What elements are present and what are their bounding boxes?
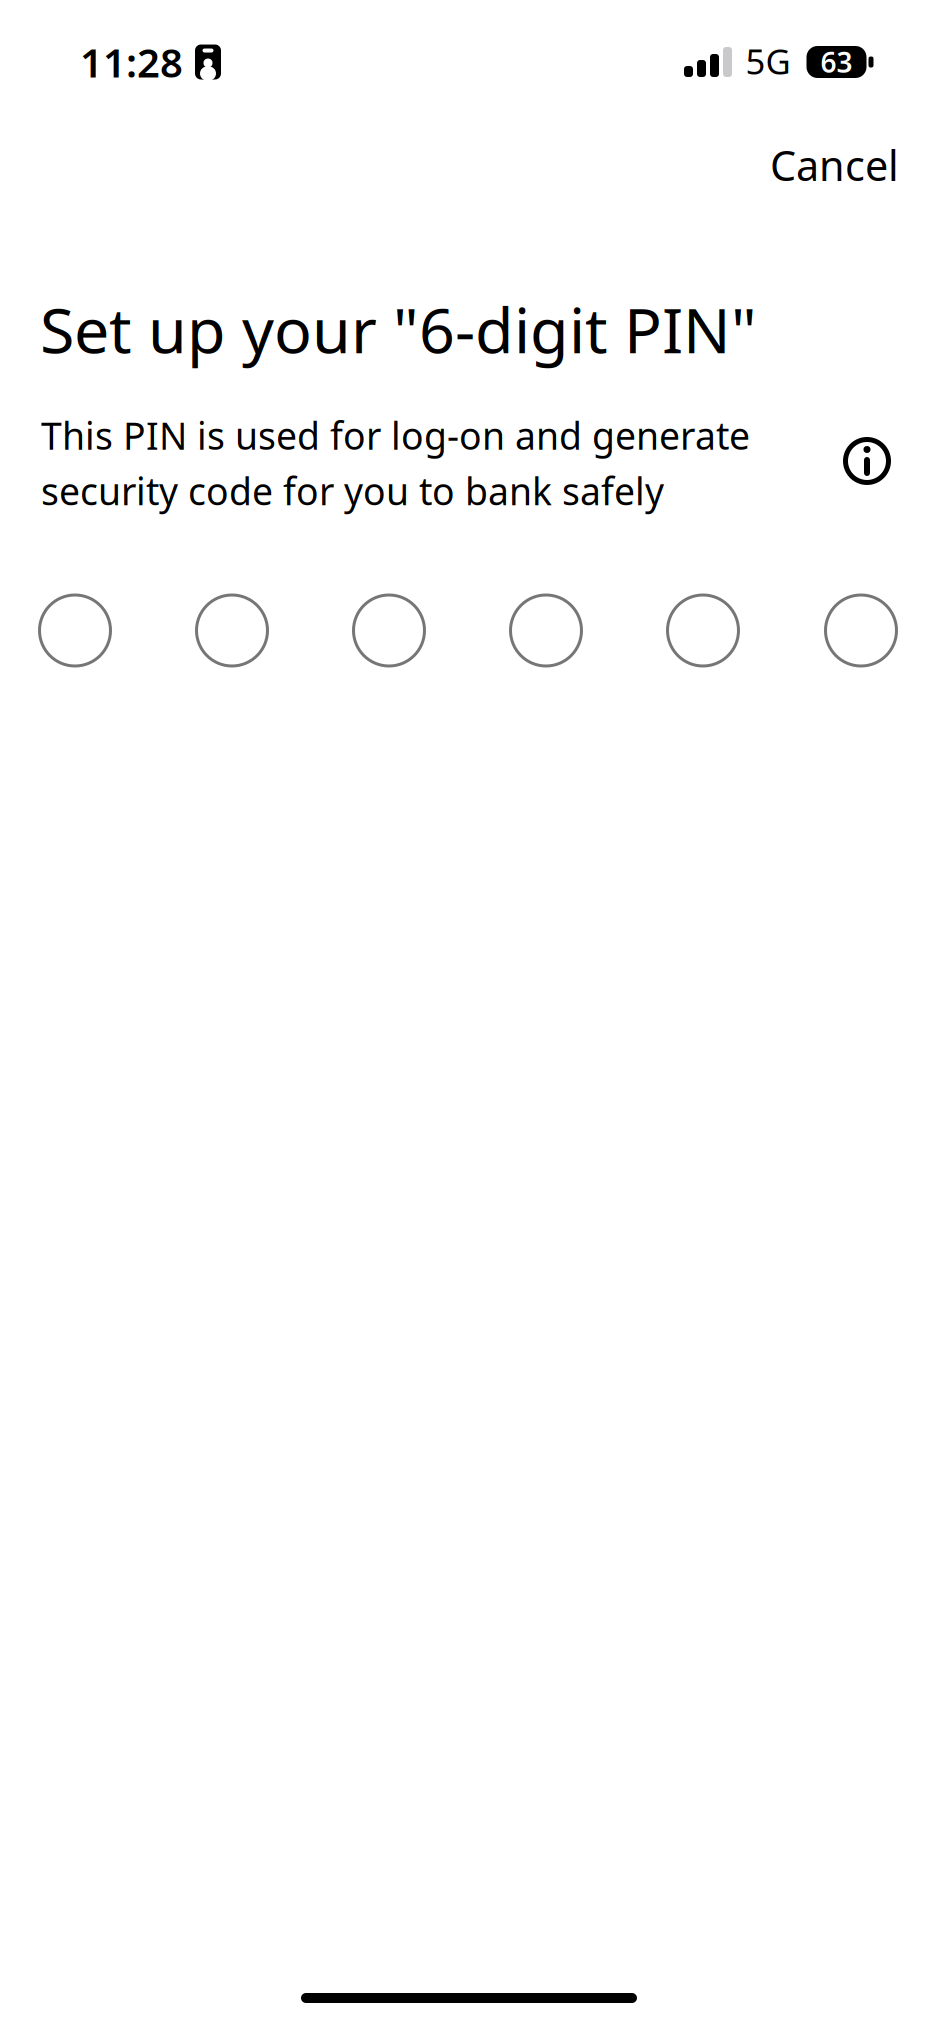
button[interactable]: More information about the PIN (831, 425, 902, 496)
button[interactable]: 6-digit PIN entry (32, 587, 904, 674)
staticText: 5G (745, 38, 790, 84)
button[interactable]: Cancel (699, 128, 899, 202)
staticText: Cancel (770, 138, 899, 192)
staticText: Set up your "6-digit PIN" (40, 287, 757, 371)
staticText: 63 (820, 43, 852, 81)
staticText: This PIN is used for log-on and generate… (41, 410, 750, 516)
staticText: 11:28 (80, 35, 183, 88)
